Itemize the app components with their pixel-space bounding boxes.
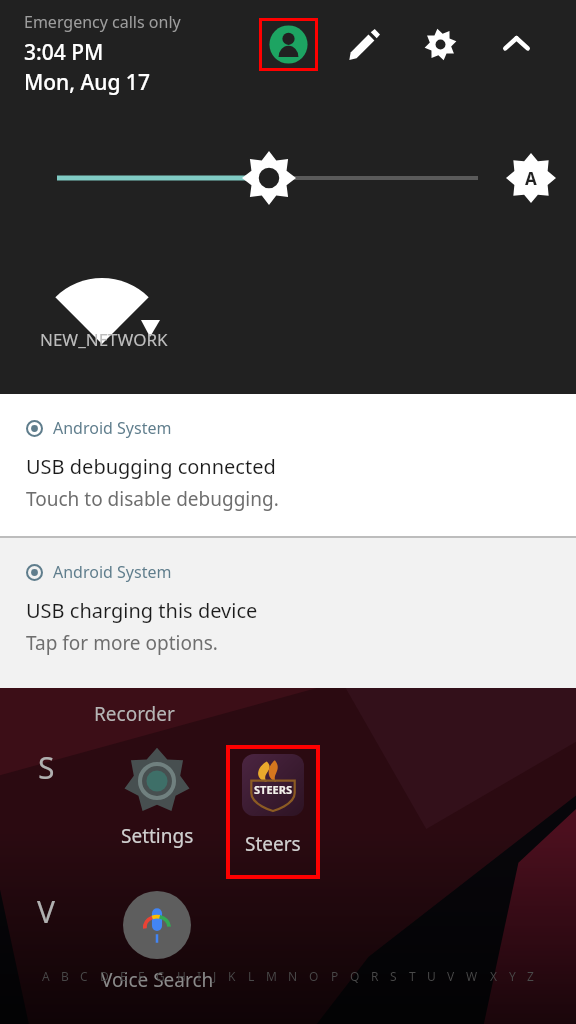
staticText: Recorder — [94, 701, 175, 727]
staticText: L — [248, 968, 255, 984]
staticText: Settings — [121, 823, 194, 849]
staticText: S — [38, 747, 55, 788]
staticText: USB charging this device — [26, 597, 258, 624]
staticText: Voice Search — [101, 967, 214, 993]
button[interactable]: Settings — [414, 18, 467, 71]
staticText: T — [409, 968, 416, 984]
staticText: E — [120, 968, 127, 984]
staticText: Q — [350, 968, 360, 984]
staticText: V — [37, 891, 55, 932]
button[interactable]: STEERS — [228, 747, 318, 877]
staticText: NEW_NETWORK — [40, 328, 168, 351]
staticText: 3:04 PM — [24, 38, 104, 67]
staticText: Emergency calls only — [24, 11, 181, 33]
staticText: V — [447, 968, 455, 984]
button[interactable]: Brightness — [0, 150, 576, 206]
button[interactable]: Auto brightness — [505, 152, 557, 204]
staticText: Android System — [53, 417, 172, 439]
staticText: USB debugging connected — [26, 453, 276, 480]
staticText: J — [213, 968, 217, 984]
staticText: M — [266, 968, 277, 984]
staticText: W — [466, 968, 478, 984]
staticText: Touch to disable debugging. — [26, 486, 279, 512]
staticText: B — [61, 968, 69, 984]
staticText: A — [525, 167, 537, 190]
button[interactable]: Android System — [0, 394, 576, 536]
button[interactable]: Settings — [92, 747, 222, 849]
staticText: C — [80, 968, 88, 984]
staticText: N — [288, 968, 298, 984]
staticText: P — [331, 968, 339, 984]
button[interactable]: User profile — [259, 18, 318, 71]
staticText: X — [490, 968, 498, 984]
staticText: Mon, Aug 17 — [24, 68, 150, 97]
staticText: F — [138, 968, 145, 984]
staticText: O — [309, 968, 319, 984]
button[interactable]: Voice Search — [92, 891, 222, 993]
staticText: S — [390, 968, 397, 984]
staticText: H — [177, 968, 186, 984]
staticText: Z — [527, 968, 534, 984]
staticText: STEERS — [254, 782, 293, 797]
staticText: I — [197, 968, 202, 984]
staticText: Android System — [53, 561, 172, 583]
staticText: G — [156, 968, 165, 984]
staticText: K — [228, 968, 236, 984]
staticText: Tap for more options. — [26, 630, 218, 656]
staticText: D — [100, 968, 109, 984]
staticText: Steers — [245, 831, 301, 857]
button[interactable]: NEW_NETWORK — [40, 258, 190, 368]
staticText: Y — [509, 968, 516, 984]
staticText: U — [427, 968, 436, 984]
staticText: A — [42, 968, 50, 984]
button[interactable]: Android System — [0, 538, 576, 688]
button[interactable]: Collapse — [490, 18, 543, 71]
button[interactable]: Edit — [338, 18, 391, 71]
staticText: R — [371, 968, 379, 984]
